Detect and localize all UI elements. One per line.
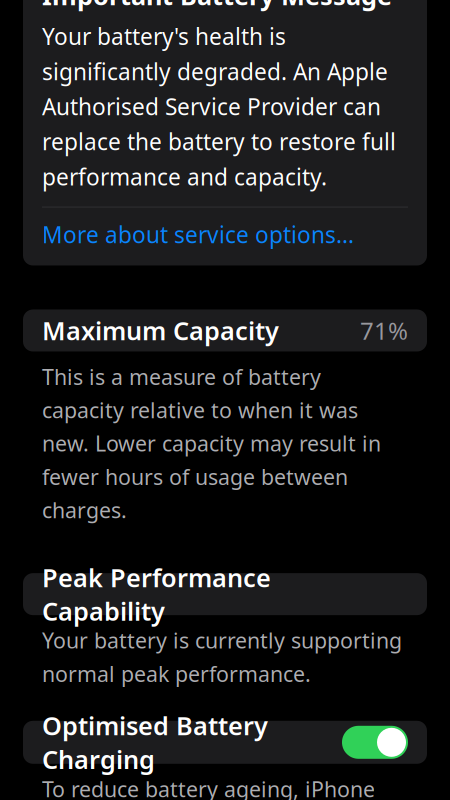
staticText: Maximum Capacity: [42, 314, 279, 347]
staticText: Peak Performance Capability: [42, 560, 271, 628]
staticText: This is a measure of battery capacity re…: [42, 362, 381, 524]
button[interactable]: More about service options...: [42, 207, 408, 261]
staticText: To reduce battery ageing, iPhone learns …: [42, 775, 406, 800]
button[interactable]: Optimised Battery Charging: [23, 721, 427, 764]
staticText: Important Battery Message: [42, 0, 392, 12]
staticText: More about service options...: [42, 219, 354, 249]
staticText: 71%: [360, 315, 408, 346]
staticText: Your battery's health is significantly d…: [42, 21, 396, 192]
staticText: Optimised Battery Charging: [42, 709, 268, 776]
staticText: Your battery is currently supporting nor…: [42, 626, 402, 688]
